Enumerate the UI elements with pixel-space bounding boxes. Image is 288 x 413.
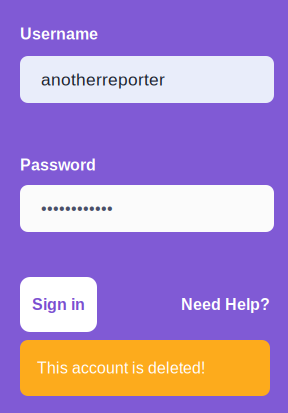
staticText: This account is deleted! (37, 359, 205, 377)
staticText: Password (20, 156, 96, 174)
button[interactable]: •••••••••••• (20, 185, 274, 232)
staticText: Need Help? (181, 296, 270, 313)
staticText: Sign in (32, 296, 85, 313)
staticText: Username (20, 25, 98, 43)
button[interactable]: anotherreporter (20, 56, 274, 103)
staticText: anotherreporter (41, 70, 165, 89)
button[interactable]: Sign in (20, 277, 97, 332)
staticText: •••••••••••• (41, 200, 113, 217)
button[interactable]: Need Help? (181, 277, 270, 332)
